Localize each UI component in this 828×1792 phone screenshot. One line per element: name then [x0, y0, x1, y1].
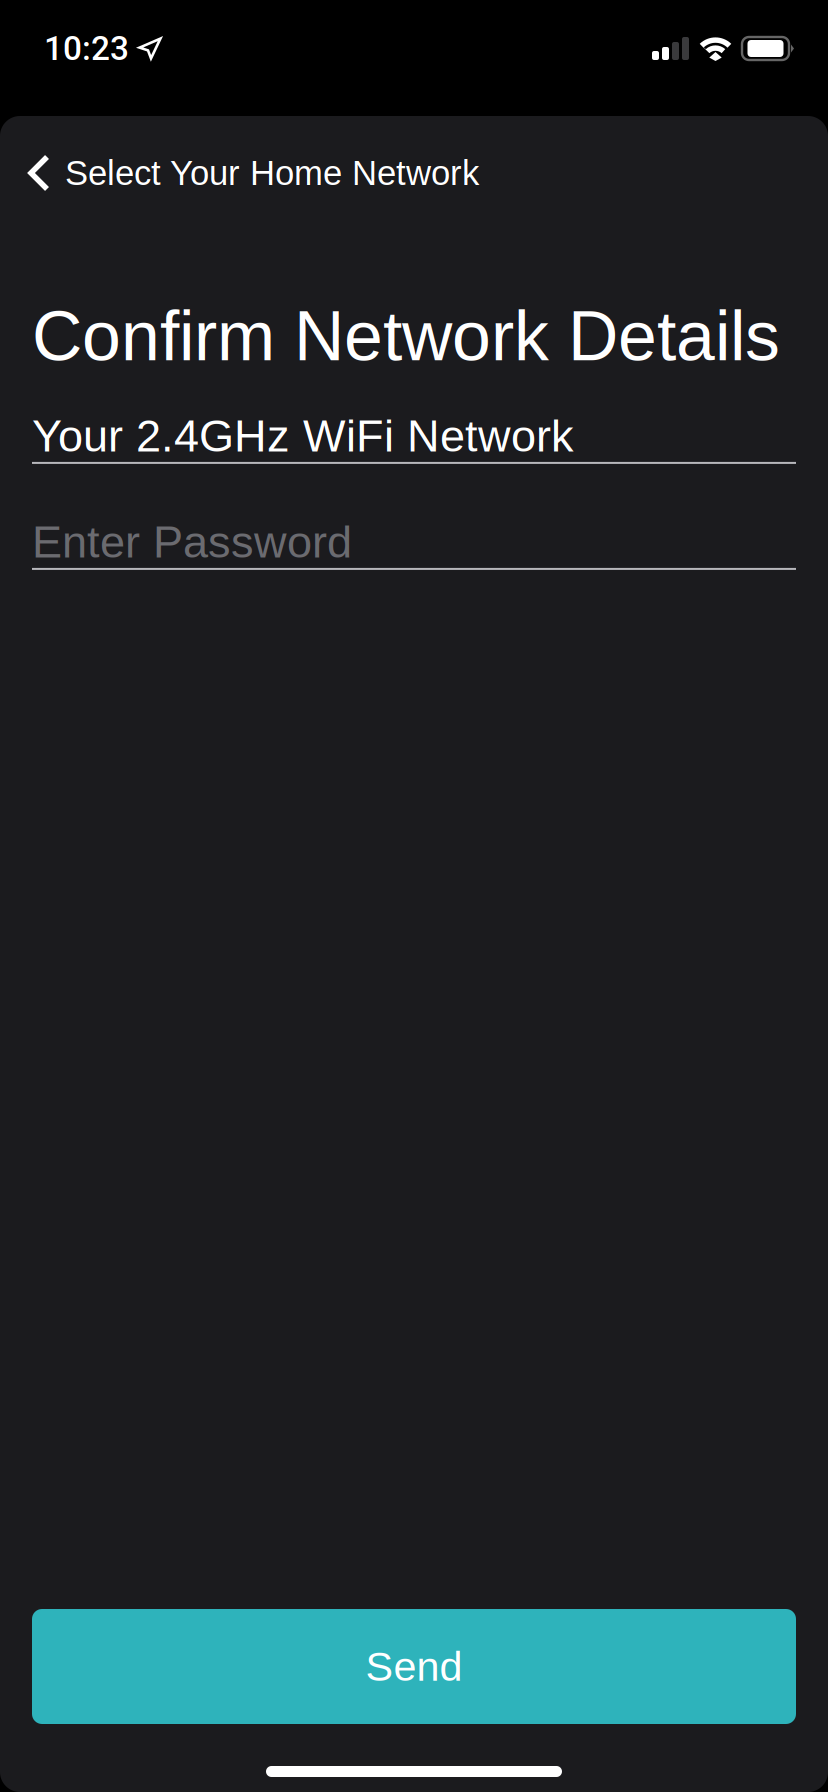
staticText: Your 2.4GHz WiFi Network	[32, 411, 574, 461]
staticText: Enter Password	[32, 517, 352, 567]
button[interactable]: Enter Password	[32, 516, 796, 570]
button[interactable]: Send	[32, 1609, 796, 1724]
button[interactable]: Your 2.4GHz WiFi Network	[32, 410, 796, 464]
staticText: 10:23	[44, 29, 129, 68]
staticText: Send	[365, 1643, 462, 1690]
button[interactable]: Back to Select Your Home Network	[0, 116, 479, 230]
staticText: Select Your Home Network	[65, 154, 479, 192]
staticText: Confirm Network Details	[32, 297, 780, 375]
